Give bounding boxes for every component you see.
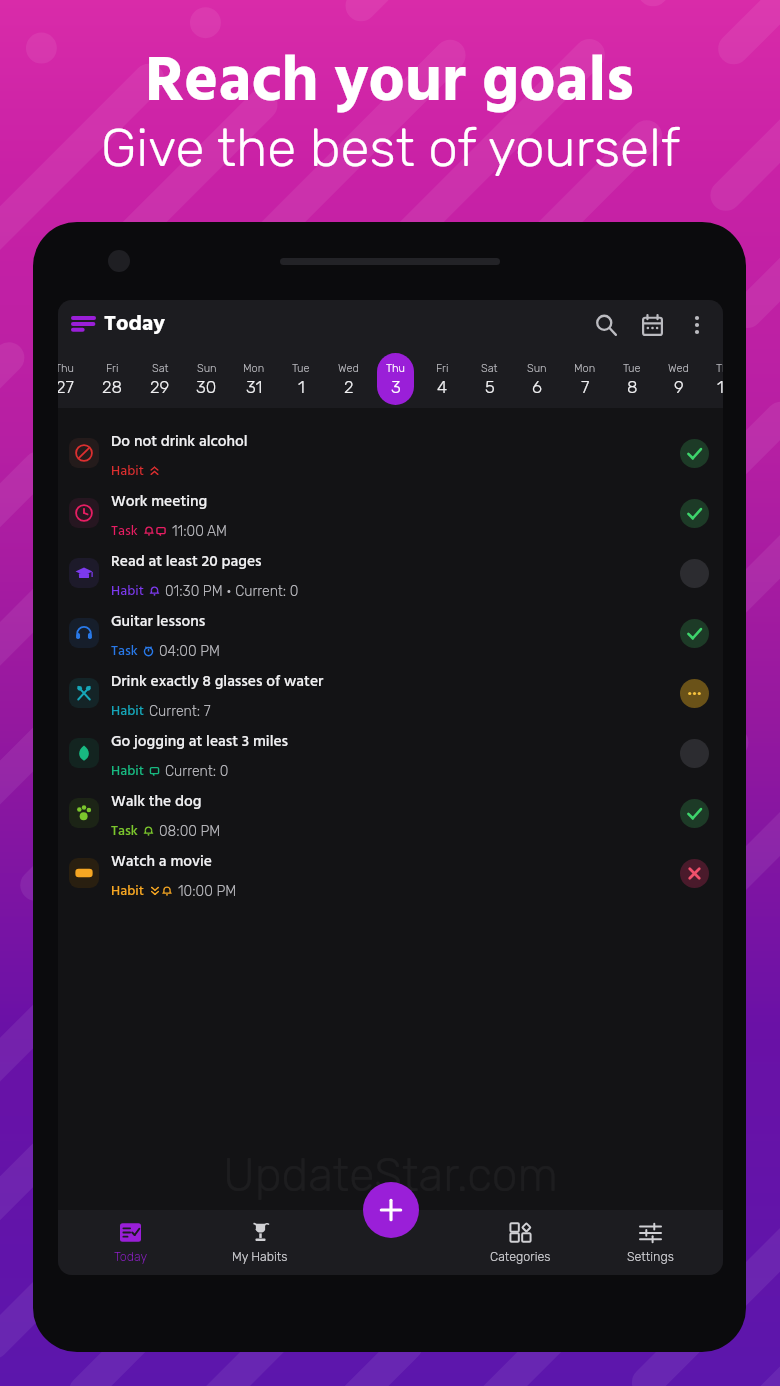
button[interactable]: Thu [377,353,414,405]
staticText: Today [114,1249,148,1264]
staticText: 31 [246,377,263,397]
staticText: Drink exactly 8 glasses of water [111,670,324,695]
staticText: Mon [574,362,596,375]
staticText: Sun [527,362,547,375]
button[interactable]: Add habit [363,1182,419,1238]
staticText: Sat [152,362,169,375]
button[interactable]: Toggle completion [680,559,709,588]
staticText: 04:00 PM [159,643,220,660]
staticText: Habit [111,580,144,602]
button[interactable]: Wed [660,353,697,405]
staticText: 30 [196,377,217,397]
staticText: 29 [150,377,170,397]
button[interactable]: Toggle completion [680,619,709,648]
staticText: 10 [717,377,723,397]
button[interactable]: Watch a movie [58,843,723,903]
button[interactable]: Sat [471,353,508,405]
button[interactable]: Do not drink alcohol [58,423,723,483]
button[interactable]: Sat [141,353,178,405]
button[interactable]: Mon [566,353,603,405]
staticText: Fri [106,362,119,375]
staticText: Read at least 20 pages [111,550,262,575]
staticText: 9 [674,377,684,397]
button[interactable]: Thu [707,353,723,405]
staticText: Task [111,820,138,842]
button[interactable]: Toggle completion [680,799,709,828]
staticText: Today [104,307,165,342]
staticText: Mon [243,362,265,375]
button[interactable]: Guitar lessons [58,603,723,663]
staticText: My Habits [232,1249,288,1264]
staticText: 27 [58,377,74,397]
button[interactable]: Sun [518,353,555,405]
staticText: Watch a movie [111,850,212,875]
staticText: 1 [298,377,305,397]
staticText: 7 [581,377,590,397]
button[interactable]: Read at least 20 pages [58,543,723,603]
button[interactable]: More options [675,303,719,347]
button[interactable]: Toggle completion [680,859,709,888]
button[interactable]: Walk the dog [58,783,723,843]
button[interactable]: Toggle completion [680,679,709,708]
staticText: Tue [292,362,310,375]
button[interactable]: Tue [613,353,650,405]
staticText: 08:00 PM [159,823,221,840]
staticText: 4 [437,377,448,397]
staticText: 10:00 PM [178,883,237,900]
button[interactable]: Calendar [629,302,675,348]
button[interactable]: Today [66,1216,195,1270]
staticText: Fri [436,362,449,375]
staticText: Habit [111,880,144,902]
button[interactable]: Fri [424,353,461,405]
button[interactable]: Go jogging at least 3 miles [58,723,723,783]
staticText: Current: 0 [165,763,229,780]
button[interactable]: Toggle completion [680,439,709,468]
button[interactable]: Toggle completion [680,499,709,528]
button[interactable]: Thu [58,353,83,405]
staticText: Settings [627,1249,674,1264]
staticText: Do not drink alcohol [111,430,248,455]
staticText: Habit [111,700,144,722]
button[interactable]: Drink exactly 8 glasses of water [58,663,723,723]
button[interactable]: Menu [59,300,107,348]
staticText: 5 [485,377,495,397]
staticText: Sat [481,362,498,375]
staticText: Task [111,520,138,542]
staticText: Give the best of yourself [101,116,680,179]
button[interactable]: Sun [188,353,225,405]
button[interactable]: Search [583,302,629,348]
staticText: UpdateStar.com [223,1148,558,1203]
button[interactable]: Toggle completion [680,739,709,768]
button[interactable]: Wed [330,353,367,405]
staticText: Reach your goals [145,32,635,134]
staticText: Work meeting [111,490,208,515]
staticText: Habit [111,760,144,782]
staticText: Wed [338,362,359,375]
staticText: Go jogging at least 3 miles [111,730,289,755]
button[interactable]: Work meeting [58,483,723,543]
staticText: Thu [58,362,74,375]
button[interactable]: Tue [282,353,319,405]
staticText: 8 [627,377,638,397]
staticText: 01:30 PM • Current: 0 [165,583,299,600]
button[interactable]: Settings [585,1216,715,1270]
button[interactable]: My Habits [195,1216,325,1270]
button[interactable]: Mon [235,353,272,405]
staticText: Current: 7 [149,703,211,720]
staticText: Categories [490,1249,551,1264]
staticText: Wed [668,362,689,375]
staticText: 28 [102,377,123,397]
staticText: 3 [391,377,401,397]
staticText: 2 [344,377,354,397]
staticText: Habit [111,460,144,482]
staticText: Task [111,640,138,662]
staticText: 11:00 AM [172,523,228,540]
button[interactable]: Categories [455,1216,585,1270]
staticText: Thu [386,362,405,375]
staticText: 6 [532,377,542,397]
staticText: Thu [716,362,723,375]
staticText: Walk the dog [111,790,202,815]
button[interactable]: Fri [94,353,131,405]
staticText: Tue [623,362,641,375]
staticText: Guitar lessons [111,610,206,635]
